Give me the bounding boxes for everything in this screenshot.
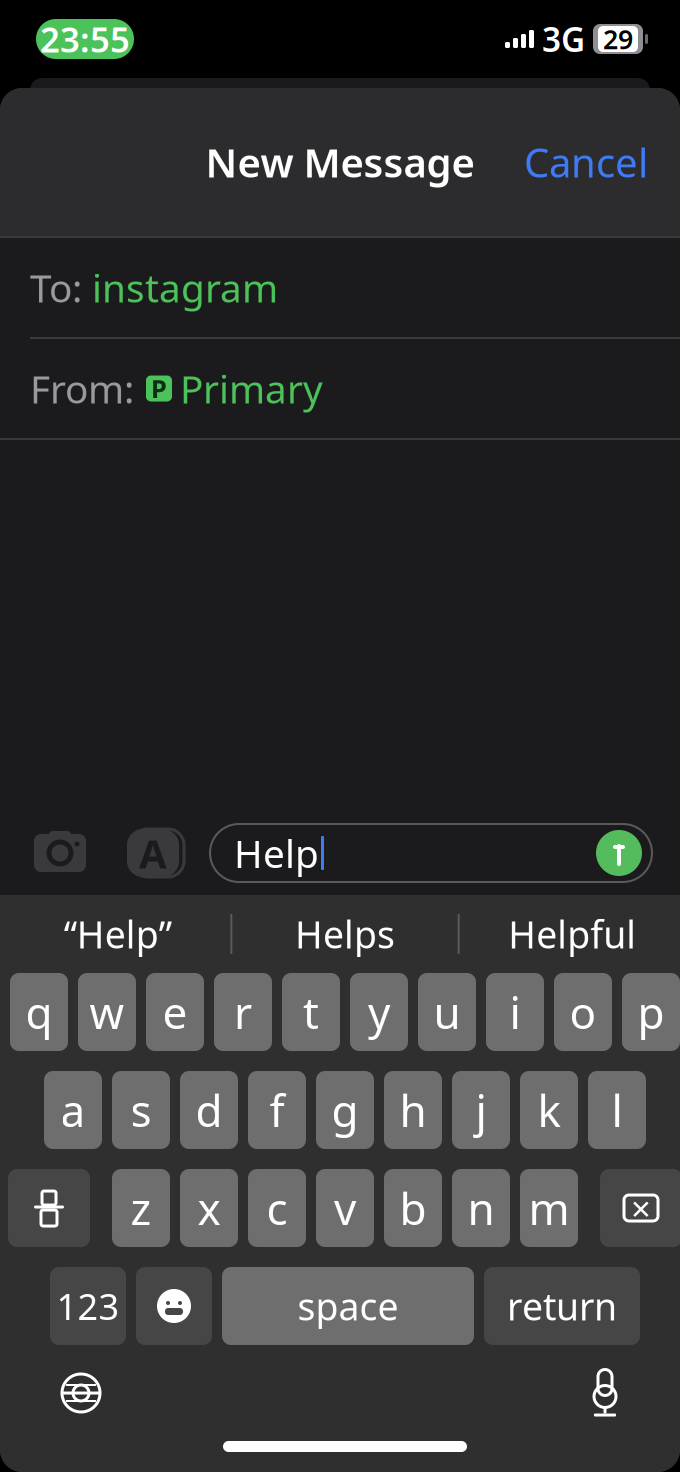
- button[interactable]: x: [180, 1169, 238, 1247]
- staticText: h: [399, 1081, 426, 1139]
- button[interactable]: p: [622, 973, 680, 1051]
- staticText: n: [467, 1179, 494, 1237]
- button[interactable]: Delete: [600, 1169, 680, 1247]
- button[interactable]: k: [520, 1071, 578, 1149]
- staticText: A: [139, 826, 167, 879]
- button[interactable]: r: [214, 973, 272, 1051]
- staticText: k: [537, 1081, 560, 1139]
- staticText: “Help”: [64, 909, 172, 959]
- button[interactable]: Cancel: [508, 125, 664, 198]
- staticText: f: [269, 1081, 284, 1139]
- button[interactable]: a: [44, 1071, 102, 1149]
- button[interactable]: Camera: [22, 821, 98, 885]
- staticText: l: [611, 1081, 622, 1139]
- staticText: return: [507, 1281, 617, 1331]
- button[interactable]: y: [350, 973, 408, 1051]
- staticText: Helpful: [508, 909, 636, 959]
- button[interactable]: f: [248, 1071, 306, 1149]
- staticText: j: [475, 1081, 486, 1139]
- button[interactable]: d: [180, 1071, 238, 1149]
- button[interactable]: z: [112, 1169, 170, 1247]
- button[interactable]: o: [554, 973, 612, 1051]
- button[interactable]: From:: [0, 339, 680, 438]
- staticText: o: [569, 983, 596, 1041]
- staticText: space: [297, 1281, 398, 1331]
- button[interactable]: Next keyboard: [45, 1357, 117, 1429]
- button[interactable]: h: [384, 1071, 442, 1149]
- button[interactable]: Emoji: [136, 1267, 212, 1345]
- staticText: y: [368, 983, 390, 1041]
- staticText: 3G: [542, 17, 585, 61]
- button[interactable]: Shift: [8, 1169, 90, 1247]
- staticText: z: [130, 1179, 151, 1237]
- button[interactable]: Send: [592, 826, 646, 880]
- staticText: New Message: [205, 135, 474, 188]
- button[interactable]: Helpful: [460, 895, 680, 973]
- staticText: m: [528, 1179, 569, 1237]
- staticText: t: [303, 983, 319, 1041]
- button[interactable]: To:: [0, 238, 680, 337]
- staticText: instagram: [92, 262, 278, 313]
- staticText: From:: [30, 363, 134, 414]
- staticText: b: [399, 1179, 426, 1237]
- button[interactable]: q: [10, 973, 68, 1051]
- button[interactable]: i: [486, 973, 544, 1051]
- button[interactable]: return: [484, 1267, 640, 1345]
- button[interactable]: Helps: [232, 895, 458, 973]
- button[interactable]: v: [316, 1169, 374, 1247]
- staticText: d: [195, 1081, 222, 1139]
- staticText: To:: [30, 262, 82, 313]
- button[interactable]: “Help”: [5, 895, 230, 973]
- button[interactable]: b: [384, 1169, 442, 1247]
- button[interactable]: Apps: [112, 820, 194, 886]
- button[interactable]: e: [146, 973, 204, 1051]
- staticText: ×: [631, 1185, 651, 1231]
- button[interactable]: w: [78, 973, 136, 1051]
- button[interactable]: u: [418, 973, 476, 1051]
- staticText: s: [130, 1081, 151, 1139]
- staticText: Primary: [180, 363, 323, 414]
- button[interactable]: m: [520, 1169, 578, 1247]
- button[interactable]: j: [452, 1071, 510, 1149]
- staticText: g: [331, 1081, 358, 1139]
- staticText: Helps: [295, 909, 395, 959]
- button[interactable]: c: [248, 1169, 306, 1247]
- button[interactable]: l: [588, 1071, 646, 1149]
- staticText: w: [89, 983, 124, 1041]
- staticText: 23:55: [40, 16, 130, 62]
- staticText: p: [637, 983, 664, 1041]
- button[interactable]: Dictate: [571, 1355, 639, 1431]
- staticText: i: [509, 983, 520, 1041]
- staticText: a: [60, 1081, 85, 1139]
- button[interactable]: t: [282, 973, 340, 1051]
- button[interactable]: space: [222, 1267, 474, 1345]
- staticText: u: [433, 983, 460, 1041]
- button[interactable]: g: [316, 1071, 374, 1149]
- staticText: x: [197, 1179, 220, 1237]
- staticText: Cancel: [524, 135, 648, 188]
- staticText: 29: [603, 21, 633, 57]
- staticText: P: [151, 372, 167, 405]
- button[interactable]: s: [112, 1071, 170, 1149]
- button[interactable]: 123: [50, 1267, 126, 1345]
- staticText: Help: [234, 827, 319, 879]
- staticText: 123: [56, 1282, 119, 1330]
- staticText: r: [234, 983, 252, 1041]
- staticText: e: [162, 983, 187, 1041]
- button[interactable]: n: [452, 1169, 510, 1247]
- staticText: q: [25, 983, 52, 1041]
- staticText: v: [334, 1179, 356, 1237]
- staticText: c: [266, 1179, 287, 1237]
